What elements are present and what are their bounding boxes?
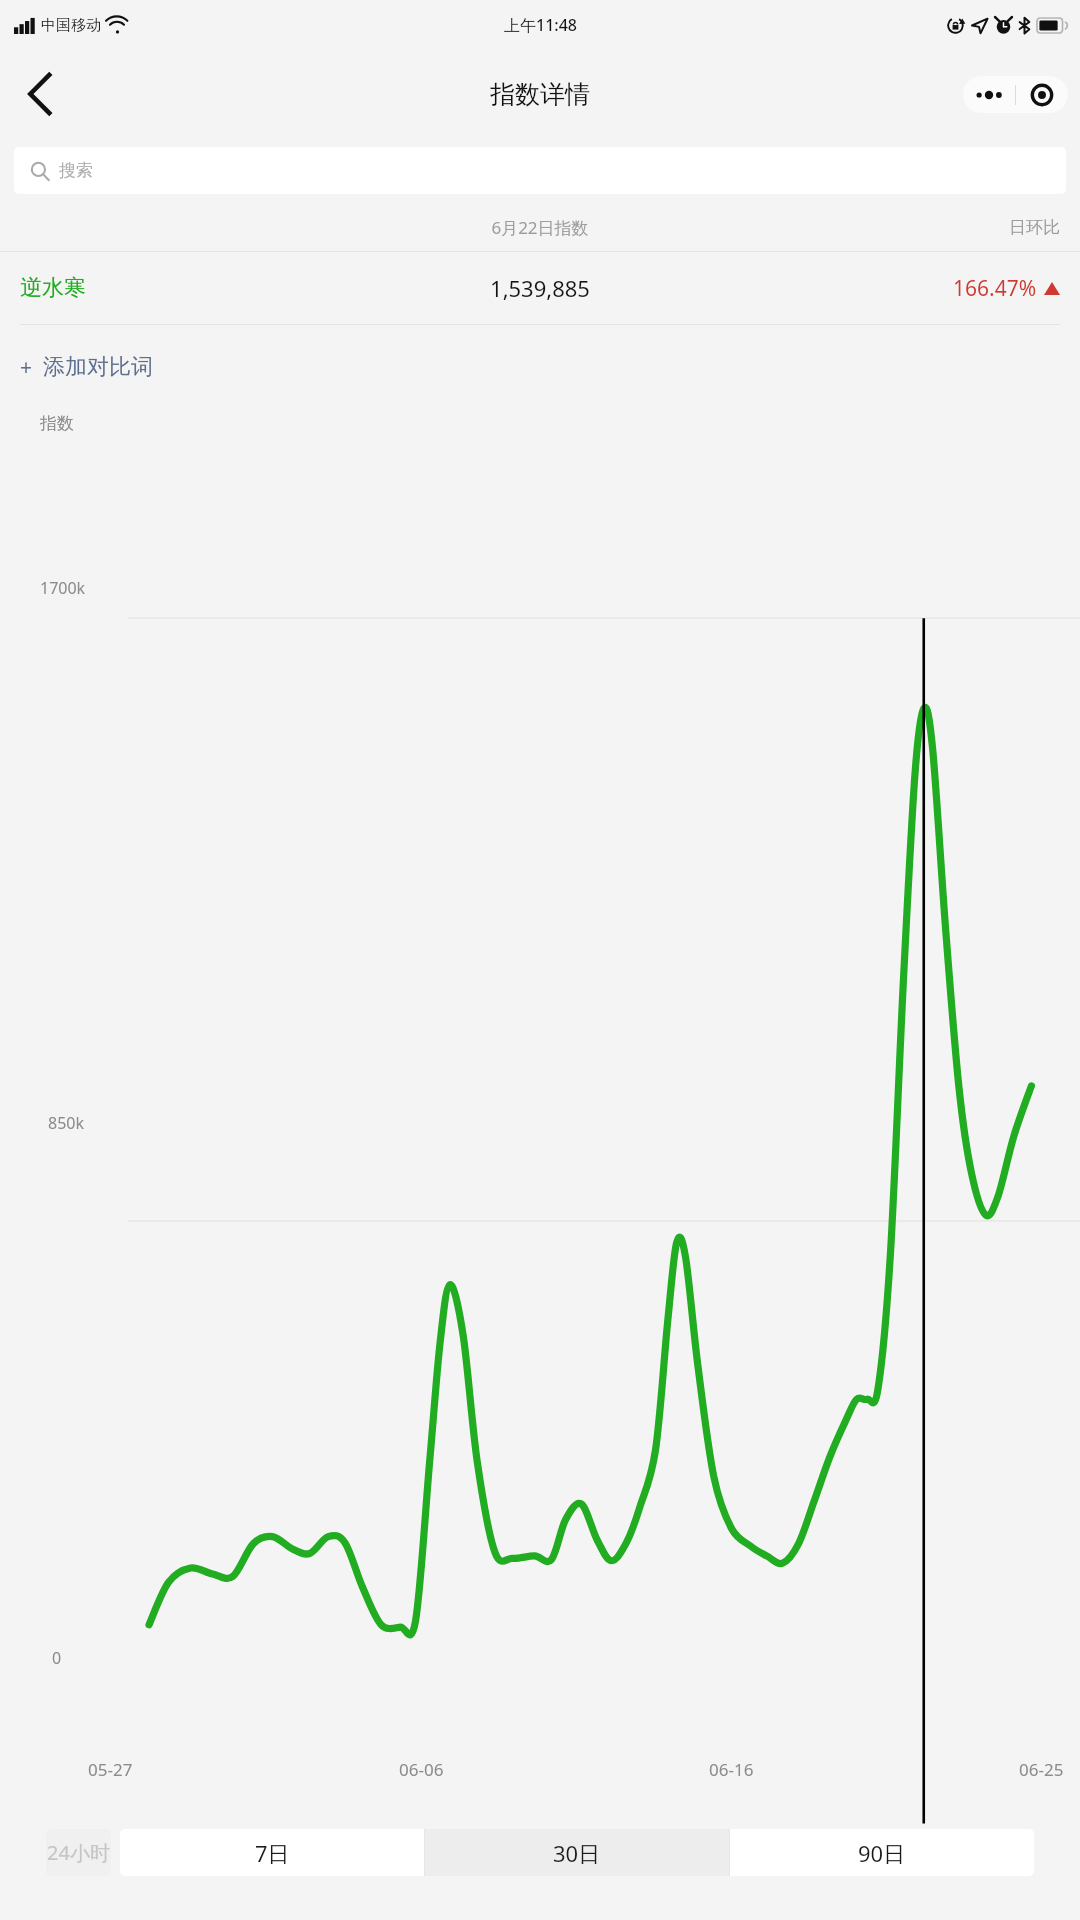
staticText: 指数详情 (490, 79, 590, 110)
button[interactable]: More (963, 76, 1015, 113)
button[interactable]: + (20, 325, 169, 409)
staticText: 7日 (255, 1838, 290, 1868)
staticText: 6月22日指数 (346, 216, 734, 239)
button[interactable]: 90日 (730, 1829, 1034, 1876)
staticText: 指数 (40, 413, 74, 434)
staticText: 中国移动 (41, 16, 101, 35)
staticText: 06-25 (1019, 1758, 1064, 1781)
button[interactable]: 逆水寒 (0, 252, 1080, 324)
staticText: 1,539,885 (346, 273, 734, 303)
button[interactable]: 7日 (120, 1829, 424, 1876)
staticText: 850k (48, 1112, 85, 1134)
staticText: 逆水寒 (20, 274, 346, 302)
staticText: 24小时 (47, 1839, 110, 1866)
staticText: 添加对比词 (43, 353, 153, 381)
staticText: 06-06 (399, 1758, 444, 1781)
staticText: 1700k (40, 577, 86, 599)
staticText: 0 (52, 1647, 62, 1669)
button[interactable]: Back (8, 62, 72, 126)
staticText: 06-16 (709, 1758, 754, 1781)
button[interactable]: Close (1016, 76, 1068, 113)
staticText: 搜索 (59, 160, 93, 181)
button[interactable]: 30日 (425, 1829, 729, 1876)
staticText: 日环比 (734, 217, 1060, 238)
staticText: 90日 (858, 1838, 906, 1868)
staticText: 166.47% (953, 274, 1037, 303)
staticText: 05-27 (88, 1758, 133, 1781)
button[interactable]: 搜索 (14, 147, 1066, 194)
staticText: 上午11:48 (504, 14, 577, 36)
button[interactable]: 24小时 (46, 1829, 111, 1876)
staticText: + (20, 353, 33, 382)
staticText: 30日 (553, 1838, 601, 1868)
